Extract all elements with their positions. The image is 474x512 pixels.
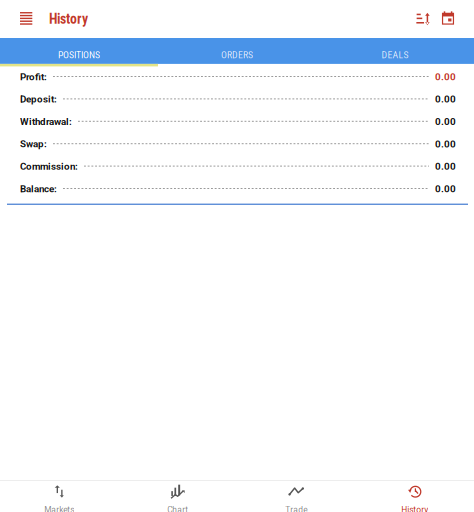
button[interactable]: Markets — [0, 481, 118, 512]
staticText: Markets — [44, 505, 74, 512]
staticText: Commission: — [20, 161, 78, 172]
button[interactable]: Chart — [118, 481, 237, 512]
staticText: ORDERS — [221, 49, 253, 61]
staticText: Trade — [285, 505, 307, 512]
staticText: 0.00 — [435, 161, 456, 172]
staticText: DEALS — [381, 49, 408, 61]
staticText: Balance: — [20, 183, 57, 195]
button[interactable]: POSITIONS — [0, 38, 158, 64]
button[interactable]: ORDERS — [158, 38, 316, 64]
staticText: POSITIONS — [58, 49, 100, 61]
button[interactable]: DEALS — [316, 38, 474, 64]
button[interactable]: Sort — [412, 0, 436, 38]
button[interactable]: Select date range — [436, 0, 460, 38]
button[interactable]: Trade — [237, 481, 355, 512]
staticText: 0.00 — [435, 116, 456, 127]
staticText: Swap: — [20, 138, 47, 150]
button[interactable]: Menu — [0, 0, 49, 38]
staticText: Chart — [167, 505, 188, 512]
staticText: Withdrawal: — [20, 116, 72, 127]
button[interactable]: History — [355, 481, 474, 512]
staticText: Profit: — [20, 71, 47, 83]
staticText: 0.00 — [435, 138, 456, 150]
staticText: 0.00 — [435, 71, 456, 83]
staticText: History — [401, 505, 428, 512]
staticText: 0.00 — [435, 93, 456, 105]
staticText: History — [49, 11, 88, 27]
staticText: 0.00 — [435, 183, 456, 195]
staticText: Deposit: — [20, 93, 57, 105]
